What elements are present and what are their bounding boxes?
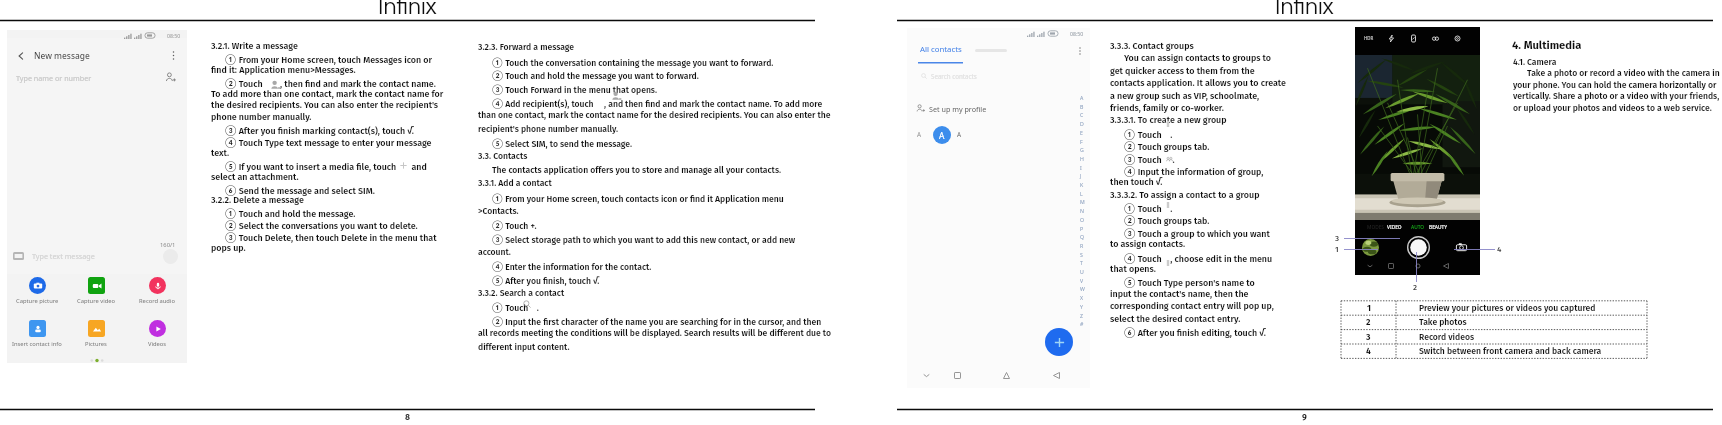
button[interactable]: Insert contact info	[9, 320, 65, 350]
staticText: select an attachment.	[211, 172, 299, 183]
staticText: Videos	[148, 340, 167, 348]
staticText: C	[1080, 111, 1084, 118]
staticText: pops up.	[211, 243, 246, 254]
button[interactable]: Add contact	[1045, 328, 1073, 356]
staticText: ② Input the first character of the name …	[492, 315, 822, 327]
staticText: R	[1080, 242, 1084, 249]
staticText: 4. Multimedia	[1512, 39, 1582, 52]
staticText: phone number manually.	[211, 112, 312, 123]
staticText: L	[1080, 190, 1083, 197]
staticText: 9	[1302, 412, 1307, 422]
staticText: BEAUTY	[1429, 224, 1447, 231]
staticText: #	[1080, 320, 1084, 327]
staticText: M	[1080, 198, 1085, 205]
staticText: MODES	[1367, 224, 1384, 231]
button[interactable]: Pictures	[68, 320, 124, 350]
button[interactable]: Switch camera	[1454, 240, 1468, 254]
staticText: contacts application. It allows you to c…	[1110, 78, 1286, 89]
button[interactable]: Filters	[1429, 32, 1441, 44]
button[interactable]: Send	[163, 249, 178, 264]
staticText: 08:50	[1070, 30, 1084, 37]
staticText: all records meeting the conditions will …	[478, 328, 831, 338]
staticText: 160/1	[160, 241, 176, 249]
button[interactable]: Type name or number	[7, 70, 187, 86]
staticText: E	[1080, 129, 1083, 136]
staticText: 8	[405, 412, 410, 422]
button[interactable]: More options	[168, 50, 179, 61]
staticText: All contacts	[920, 44, 962, 55]
button[interactable]: Record audio	[129, 277, 185, 307]
staticText: 3.3.3.2. To assign a contact to a group	[1110, 190, 1260, 201]
staticText: ① Touch and hold the message.	[225, 207, 356, 220]
button[interactable]: More options	[1075, 46, 1085, 56]
button[interactable]: Videos	[129, 320, 185, 350]
staticText: 3	[1335, 234, 1340, 244]
staticText: 3.3.3. Contact groups	[1110, 41, 1194, 52]
button[interactable]: Recents	[1385, 260, 1397, 272]
button[interactable]: HDR	[1361, 32, 1377, 44]
button[interactable]: 2	[1341, 315, 1647, 329]
staticText: A	[917, 130, 922, 139]
staticText: Preview your pictures or videos you capt…	[1419, 303, 1596, 313]
button[interactable]: All contacts	[920, 44, 962, 55]
button[interactable]: Capture picture	[9, 277, 65, 307]
staticText: 1	[1335, 245, 1339, 255]
button[interactable]: Take photo	[1407, 236, 1430, 259]
button[interactable]: Home	[998, 367, 1014, 383]
button[interactable]: Search contacts	[921, 71, 1104, 81]
button[interactable]: Set up my profile	[907, 100, 1090, 118]
staticText: recipient's phone number manually.	[478, 124, 619, 134]
staticText: ⑥ Send the message and select SIM.	[225, 184, 375, 197]
staticText: 4.1. Camera	[1513, 57, 1557, 67]
staticText: Record audio	[139, 297, 175, 305]
staticText: Capture picture	[16, 297, 59, 305]
button[interactable]: Aspect ratio	[1407, 32, 1419, 44]
button[interactable]: Hide keyboard	[918, 367, 934, 383]
staticText: AUTO	[1411, 224, 1425, 231]
staticText: ③ After you finish marking contact(s), t…	[225, 124, 414, 137]
staticText: 3	[1366, 332, 1371, 342]
staticText: account.	[478, 247, 511, 257]
button[interactable]: A	[933, 126, 951, 144]
staticText: 3.2.3. Forward a message	[478, 42, 575, 52]
button[interactable]: Back	[1048, 367, 1064, 383]
staticText: V	[1080, 277, 1084, 284]
staticText: ② Touch +.	[492, 219, 537, 231]
button[interactable]: 3	[1341, 330, 1647, 344]
button[interactable]: Home	[1412, 260, 1424, 272]
button[interactable]: Recents	[949, 367, 965, 383]
staticText: Insert contact info	[12, 340, 62, 348]
staticText: Take photos	[1419, 317, 1467, 327]
staticText: T	[1080, 259, 1083, 266]
staticText: 4	[1366, 346, 1371, 356]
staticText: ① Touch the conversation containing the …	[492, 56, 774, 68]
staticText: ① Touch .	[492, 301, 539, 313]
staticText: ③ Touch Delete, then touch Delete in the…	[225, 231, 437, 244]
staticText: F	[1080, 138, 1083, 145]
button[interactable]: 4	[1341, 344, 1647, 358]
button[interactable]: Back	[1440, 260, 1452, 272]
button[interactable]: Gallery	[1362, 239, 1379, 256]
button[interactable]: Hide	[1364, 260, 1376, 272]
staticText: S	[1080, 251, 1083, 258]
staticText: ⑥ After you finish editing, touch √.	[1124, 326, 1266, 339]
staticText: Switch between front camera and back cam…	[1419, 346, 1602, 356]
button[interactable]: Settings	[1451, 32, 1463, 44]
staticText: Infinix	[1275, 0, 1334, 19]
button[interactable]: Pick contact	[164, 71, 177, 84]
staticText: a new group such as VIP, schoolmate,	[1110, 91, 1260, 102]
button[interactable]: Back	[7, 46, 187, 64]
staticText: to assign contacts.	[1110, 239, 1186, 250]
button[interactable]: Flash	[1385, 32, 1397, 44]
staticText: 2	[1413, 283, 1418, 293]
staticText: that opens.	[1110, 264, 1156, 275]
staticText: ② Touch , then find and mark the contact…	[225, 77, 436, 90]
button[interactable]: Back	[15, 50, 26, 61]
staticText: friends, family or co-worker.	[1110, 103, 1224, 114]
button[interactable]: 1	[1341, 301, 1647, 315]
button[interactable]: Capture video	[68, 277, 124, 307]
staticText: Y	[1080, 303, 1083, 310]
staticText: Capture video	[77, 297, 115, 305]
staticText: 3.3. Contacts	[478, 151, 528, 161]
staticText: get quicker access to them from the	[1110, 66, 1255, 77]
